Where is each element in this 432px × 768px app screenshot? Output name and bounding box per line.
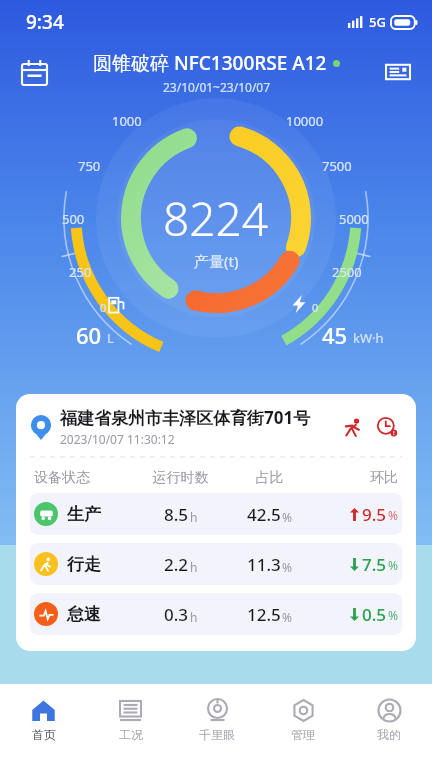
staticText: 设备状态 xyxy=(34,469,136,487)
staticText: 23/10/01~23/10/07 xyxy=(163,79,271,95)
staticText: 45 xyxy=(322,320,348,350)
staticText: 7500 xyxy=(322,157,352,175)
staticText: 0.5 xyxy=(362,603,387,626)
button[interactable]: Calendar xyxy=(12,50,56,94)
staticText: 10000 xyxy=(286,112,324,130)
staticText: 管理 xyxy=(291,727,315,742)
staticText: 首页 xyxy=(32,727,56,742)
staticText: 1000 xyxy=(112,112,142,130)
staticText: h xyxy=(190,609,198,625)
staticText: 2023/10/07 11:30:12 xyxy=(60,431,175,447)
staticText: 12.5 xyxy=(247,603,281,626)
button[interactable]: Alerts xyxy=(372,412,402,442)
staticText: 11.3 xyxy=(247,553,281,576)
staticText: 2500 xyxy=(332,263,362,281)
staticText: % xyxy=(282,509,292,525)
button[interactable]: 生产 xyxy=(30,493,402,535)
staticText: % xyxy=(388,557,398,573)
staticText: 产量(t) xyxy=(194,251,239,271)
staticText: 2.2 xyxy=(164,553,189,576)
staticText: 怠速 xyxy=(67,604,101,625)
staticText: 0.3 xyxy=(164,603,189,626)
staticText: 8224 xyxy=(163,187,269,250)
staticText: 0 xyxy=(100,300,107,315)
staticText: 工况 xyxy=(119,727,143,742)
button[interactable]: Report xyxy=(376,50,420,94)
button[interactable]: Trip xyxy=(338,412,368,442)
staticText: % xyxy=(388,607,398,623)
staticText: h xyxy=(190,509,198,525)
staticText: 行走 xyxy=(67,554,101,575)
staticText: 圆锥破碎 NFC1300RSE A12 xyxy=(93,50,327,76)
staticText: kW·h xyxy=(353,329,384,347)
staticText: 占比 xyxy=(225,469,314,487)
staticText: % xyxy=(388,507,398,523)
button[interactable]: 行走 xyxy=(30,543,402,585)
staticText: 5000 xyxy=(339,210,369,228)
staticText: 0 xyxy=(312,300,319,315)
button[interactable]: 我的 xyxy=(346,692,432,768)
staticText: 60 xyxy=(76,320,102,350)
button[interactable]: 首页 xyxy=(0,692,87,768)
staticText: 千里眼 xyxy=(199,727,235,742)
button[interactable]: 管理 xyxy=(260,692,346,768)
staticText: h xyxy=(190,559,198,575)
staticText: 福建省泉州市丰泽区体育街701号 xyxy=(60,406,311,429)
staticText: 运行时数 xyxy=(136,469,225,487)
staticText: 500 xyxy=(62,210,85,228)
staticText: 9.5 xyxy=(362,503,387,526)
staticText: 9:34 xyxy=(26,9,64,35)
button[interactable]: 怠速 xyxy=(30,593,402,635)
staticText: 生产 xyxy=(67,504,101,525)
staticText: 42.5 xyxy=(247,503,281,526)
button[interactable]: 工况 xyxy=(87,692,174,768)
staticText: 7.5 xyxy=(362,553,387,576)
staticText: L xyxy=(107,329,114,347)
staticText: 750 xyxy=(78,157,101,175)
staticText: 250 xyxy=(69,263,92,281)
staticText: 5G xyxy=(369,13,386,31)
staticText: 我的 xyxy=(377,727,401,742)
staticText: 8.5 xyxy=(164,503,189,526)
staticText: 环比 xyxy=(314,469,398,487)
staticText: % xyxy=(282,559,292,575)
staticText: % xyxy=(282,609,292,625)
button[interactable]: 千里眼 xyxy=(174,692,260,768)
